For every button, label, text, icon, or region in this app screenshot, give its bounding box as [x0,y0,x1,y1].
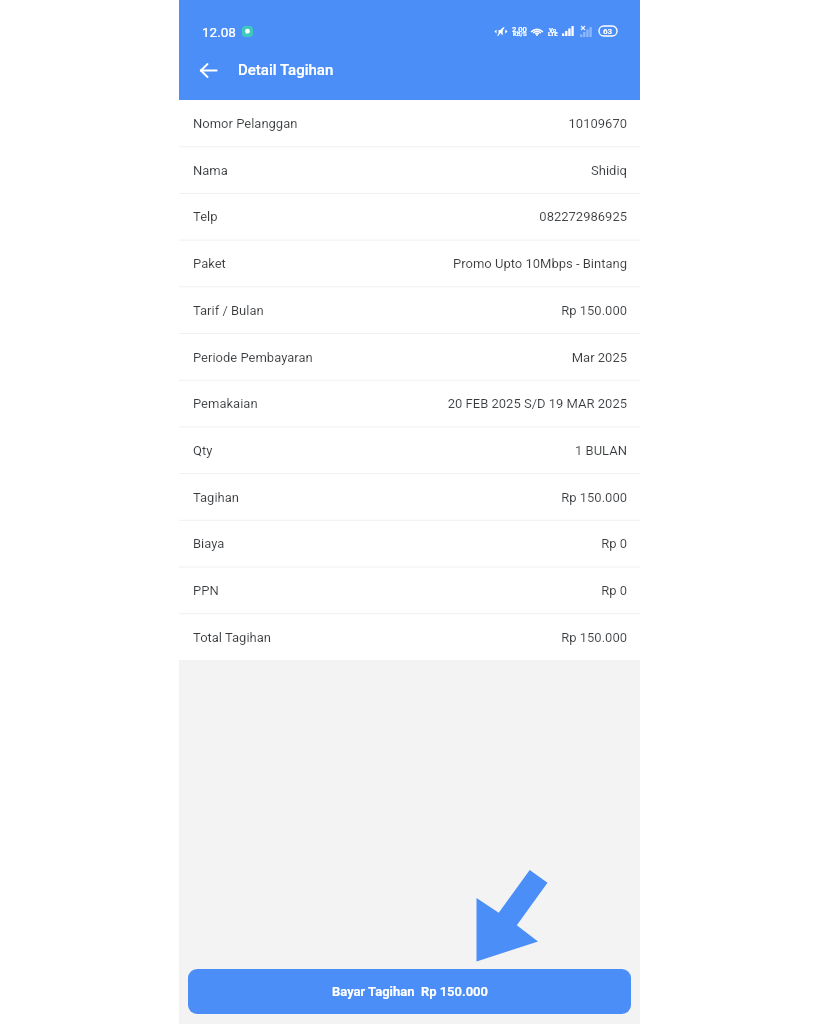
staticText: 20 FEB 2025 S/D 19 MAR 2025 [447,396,627,411]
button[interactable]: Bayar Tagihan Rp 150.000 [188,969,631,1014]
staticText: Pemakaian [193,396,258,411]
button[interactable]: Back [193,55,223,85]
button[interactable]: Telp [179,193,640,240]
staticText: Vo [549,26,557,33]
staticText: Rp 150.000 [561,303,627,318]
staticText: Rp 0 [601,583,627,598]
staticText: Qty [193,443,213,458]
staticText: Biaya [193,536,225,551]
staticText: Bayar Tagihan Rp 150.000 [332,984,488,999]
button[interactable]: Pemakaian [179,380,640,427]
staticText: Paket [193,256,226,271]
button[interactable]: Qty [179,427,640,474]
button[interactable]: Paket [179,240,640,287]
staticText: 12.08 [202,24,236,38]
staticText: Rp 150.000 [561,490,627,505]
button[interactable]: Tarif / Bulan [179,287,640,334]
staticText: Periode Pembayaran [193,350,313,365]
staticText: Rp 0 [601,536,627,551]
staticText: 1 BULAN [575,443,627,458]
staticText: 2.00 [512,25,527,34]
button[interactable]: PPN [179,567,640,614]
button[interactable]: Nomor Pelanggan [179,100,640,147]
staticText: 10109670 [568,116,627,131]
staticText: Detail Tagihan [238,61,334,79]
button[interactable]: Total Tagihan [179,614,640,661]
staticText: Tarif / Bulan [193,303,264,318]
staticText: KB/S [513,30,527,37]
staticText: Mar 2025 [571,350,627,365]
staticText: Telp [193,209,218,224]
staticText: Rp 150.000 [561,630,627,645]
staticText: Promo Upto 10Mbps - Bintang [453,256,627,271]
staticText: 63 [603,27,613,36]
button[interactable]: Periode Pembayaran [179,334,640,381]
staticText: Total Tagihan [193,630,271,645]
staticText: Nomor Pelanggan [193,116,298,131]
staticText: Nama [193,163,228,178]
staticText: PPN [193,583,219,598]
button[interactable]: Biaya [179,520,640,567]
button[interactable]: Nama [179,147,640,194]
button[interactable]: Tagihan [179,474,640,521]
staticText: Shidiq [591,163,627,178]
staticText: Tagihan [193,490,239,505]
staticText: LTE [548,30,558,37]
staticText: 082272986925 [539,209,627,224]
